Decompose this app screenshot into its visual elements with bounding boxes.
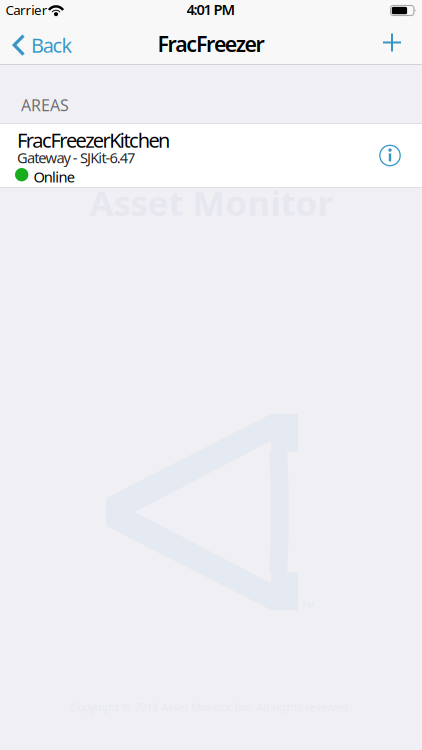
staticText: Back bbox=[31, 32, 72, 58]
staticText: FracFreezer bbox=[157, 29, 264, 58]
staticText: 4:01 PM bbox=[186, 0, 235, 19]
button[interactable]: Back bbox=[12, 32, 72, 58]
button[interactable]: Info bbox=[379, 144, 401, 166]
staticText: TM bbox=[302, 600, 314, 611]
button[interactable]: FracFreezerKitchen bbox=[0, 123, 422, 188]
staticText: AREAS bbox=[21, 94, 69, 115]
staticText: FracFreezerKitchen bbox=[17, 127, 170, 153]
staticText: Carrier bbox=[5, 1, 48, 19]
staticText: Asset Monitor bbox=[89, 179, 332, 225]
button[interactable]: Add bbox=[382, 33, 401, 52]
staticText: Gateway - SJKit-6.47 bbox=[17, 148, 135, 167]
staticText: Online bbox=[33, 167, 75, 186]
